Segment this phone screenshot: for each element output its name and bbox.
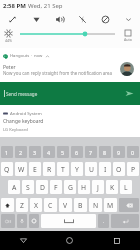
button[interactable]: 6	[71, 146, 83, 158]
button[interactable]: Y	[71, 162, 83, 176]
button[interactable]: Send message	[0, 82, 140, 105]
staticText: .	[103, 218, 105, 224]
button[interactable]: K	[106, 180, 118, 194]
button[interactable]: B	[74, 198, 87, 212]
staticText: Peter	[3, 64, 16, 71]
staticText: G	[68, 183, 73, 192]
staticText: Send message	[6, 91, 38, 97]
button[interactable]: N	[89, 198, 102, 212]
staticText: M	[107, 201, 114, 210]
button[interactable]: Expand	[117, 12, 140, 26]
button[interactable]: O	[113, 162, 125, 176]
staticText: D	[40, 183, 45, 192]
staticText: Android System	[10, 110, 42, 116]
staticText: 6	[75, 149, 79, 156]
staticText: L	[124, 183, 128, 192]
button[interactable]: Android System	[0, 105, 140, 137]
button[interactable]: Settings	[29, 214, 39, 228]
staticText: J	[97, 183, 99, 192]
staticText: Now you can reply straight from the noti…	[3, 70, 112, 76]
button[interactable]: L	[120, 180, 132, 194]
button[interactable]: 7	[85, 146, 97, 158]
staticText: T	[61, 165, 65, 174]
button[interactable]: Period	[98, 214, 109, 228]
staticText: U	[89, 165, 94, 174]
button[interactable]: 2	[15, 146, 27, 158]
button[interactable]: Enter	[111, 214, 139, 228]
button[interactable]: S	[22, 180, 34, 194]
button[interactable]: Voice input	[17, 214, 27, 228]
staticText: R	[47, 165, 52, 174]
staticText: P	[131, 165, 136, 174]
button[interactable]: E	[29, 162, 41, 176]
button[interactable]: Recents	[93, 231, 140, 250]
staticText: Wed, 21 Sep	[28, 2, 63, 10]
staticText: F	[54, 183, 58, 192]
button[interactable]: Home	[46, 231, 93, 250]
button[interactable]: Send	[125, 89, 134, 98]
button[interactable]: F	[50, 180, 62, 194]
staticText: O	[116, 165, 122, 174]
staticText: W	[18, 165, 25, 174]
button[interactable]: Q	[1, 162, 13, 176]
staticText: N	[93, 201, 99, 210]
staticText: I	[104, 165, 107, 174]
staticText: E	[33, 165, 37, 174]
staticText: now	[34, 53, 43, 59]
staticText: 3	[33, 149, 37, 156]
button[interactable]: M	[104, 198, 117, 212]
staticText: ·	[31, 53, 33, 59]
button[interactable]: Z	[16, 198, 28, 212]
button[interactable]: 9	[113, 146, 125, 158]
staticText: 7	[89, 149, 93, 156]
button[interactable]: H	[78, 180, 90, 194]
staticText: LG Keyboard	[3, 127, 28, 133]
staticText: Auto	[124, 37, 132, 42]
staticText: K	[110, 183, 115, 192]
button[interactable]: Auto-rotate	[0, 12, 24, 26]
button[interactable]: Symbols	[1, 214, 15, 228]
staticText: 8	[103, 149, 107, 156]
staticText: Y	[75, 165, 79, 174]
button[interactable]: C	[44, 198, 57, 212]
staticText: 0	[131, 149, 135, 156]
staticText: 4	[47, 149, 51, 156]
button[interactable]: V	[59, 198, 72, 212]
button[interactable]: I	[99, 162, 111, 176]
button[interactable]: Flashlight	[71, 12, 94, 26]
button[interactable]: P	[127, 162, 139, 176]
staticText: Z	[20, 201, 24, 210]
button[interactable]: Bluetooth	[24, 12, 48, 26]
button[interactable]: 3	[29, 146, 41, 158]
button[interactable]: A	[8, 180, 20, 194]
button[interactable]: J	[92, 180, 104, 194]
button[interactable]: Back	[0, 231, 46, 250]
button[interactable]: G	[64, 180, 76, 194]
button[interactable]: Space	[41, 214, 96, 228]
staticText: A	[12, 183, 17, 192]
staticText: 5	[61, 149, 65, 156]
button[interactable]: 8	[99, 146, 111, 158]
staticText: 1	[5, 149, 9, 156]
button[interactable]: D	[36, 180, 48, 194]
button[interactable]: Shift	[1, 198, 14, 212]
button[interactable]: 1	[1, 146, 13, 158]
staticText: Hangouts	[10, 53, 30, 59]
staticText: H	[81, 183, 87, 192]
button[interactable]: U	[85, 162, 97, 176]
button[interactable]: Sound	[48, 12, 71, 26]
staticText: X	[34, 201, 38, 210]
button[interactable]: Collapse	[45, 54, 50, 59]
button[interactable]: 4	[43, 146, 55, 158]
button[interactable]: T	[57, 162, 69, 176]
staticText: Q	[4, 165, 10, 174]
staticText: 9	[117, 149, 121, 156]
button[interactable]: Auto brightness	[125, 30, 131, 36]
button[interactable]: 0	[127, 146, 139, 158]
button[interactable]: R	[43, 162, 55, 176]
button[interactable]: X	[30, 198, 42, 212]
button[interactable]: Backspace	[119, 198, 139, 212]
button[interactable]: Do not disturb	[94, 12, 117, 26]
button[interactable]: 5	[57, 146, 69, 158]
button[interactable]: W	[15, 162, 27, 176]
